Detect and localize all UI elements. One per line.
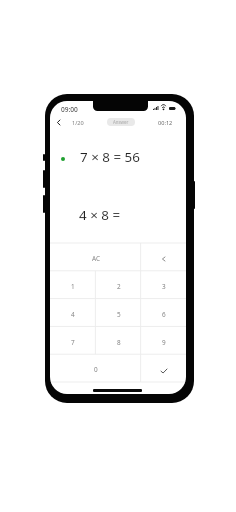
button[interactable]: Answer: [107, 118, 135, 126]
button[interactable]: AC: [50, 243, 141, 271]
button[interactable]: 9: [141, 327, 186, 355]
staticText: 1/20: [72, 119, 84, 127]
staticText: 2: [117, 282, 121, 291]
staticText: 6: [162, 310, 166, 319]
staticText: Answer: [113, 119, 129, 125]
staticText: 00:12: [158, 119, 173, 127]
button[interactable]: 4: [50, 299, 96, 327]
button[interactable]: Backspace: [141, 243, 186, 271]
staticText: 7 × 8 = 56: [80, 148, 140, 166]
staticText: AC: [92, 254, 100, 263]
button[interactable]: 3: [141, 271, 186, 299]
button[interactable]: Back: [52, 116, 65, 129]
button[interactable]: 5: [96, 299, 141, 327]
staticText: 4 × 8 =: [79, 206, 121, 224]
button[interactable]: 6: [141, 299, 186, 327]
staticText: 9: [162, 338, 166, 347]
staticText: 0: [94, 365, 98, 374]
button[interactable]: 1: [50, 271, 96, 299]
button[interactable]: 8: [96, 327, 141, 355]
button[interactable]: 0: [50, 355, 141, 382]
staticText: 5: [117, 310, 121, 319]
staticText: 8: [117, 338, 121, 347]
staticText: 4: [71, 310, 75, 319]
staticText: 3: [162, 282, 166, 291]
button[interactable]: Submit answer: [141, 355, 186, 382]
staticText: 1: [71, 282, 75, 291]
staticText: 09:00: [61, 105, 78, 114]
button[interactable]: 2: [96, 271, 141, 299]
staticText: 7: [71, 338, 75, 347]
button[interactable]: 7: [50, 327, 96, 355]
